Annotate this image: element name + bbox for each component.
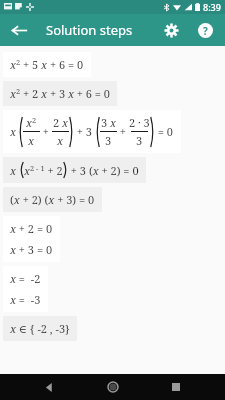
button[interactable]: x2 + 2 x + 3 x + 6 = 0 <box>3 81 117 106</box>
staticText: x = -3 <box>10 292 41 307</box>
staticText: x <box>28 133 35 148</box>
staticText: x + 3 = 0 <box>10 242 53 257</box>
button[interactable]: Back <box>2 14 36 46</box>
staticText: x ∈ { -2 , -3} <box>10 321 70 336</box>
button[interactable]: x ∈ { -2 , -3} <box>3 316 77 341</box>
staticText: x + 2 = 0 <box>10 221 53 236</box>
staticText: (x + 2) (x + 3) = 0 <box>10 192 95 207</box>
staticText: x2 <box>26 115 37 130</box>
staticText: x2 + 2 x + 3 x + 6 = 0 <box>10 86 110 101</box>
button[interactable]: Home <box>98 374 128 400</box>
staticText: 3 <box>136 133 143 148</box>
staticText: x <box>57 133 64 148</box>
button[interactable]: x2 + 5 x + 6 = 0 <box>3 52 91 77</box>
button[interactable]: Recents <box>161 374 191 400</box>
staticText: + 3 <box>74 124 95 139</box>
button[interactable]: (x + 2) (x + 3) = 0 <box>3 187 102 212</box>
staticText: x <box>10 124 17 139</box>
staticText: x = -2 <box>10 271 41 286</box>
staticText: 3 <box>105 133 112 148</box>
staticText: ? <box>203 24 208 38</box>
staticText: 8:39 <box>203 1 221 13</box>
button[interactable]: x = -2 <box>3 266 48 312</box>
staticText: 2 · 3 <box>129 115 150 130</box>
staticText: x2 - 1 + 2 <box>24 163 63 178</box>
staticText: + <box>40 124 52 139</box>
staticText: x <box>10 163 19 178</box>
staticText: + <box>117 124 129 139</box>
button[interactable]: Settings <box>154 14 188 46</box>
button[interactable]: x <box>3 110 181 153</box>
staticText: Solution steps <box>46 21 133 39</box>
staticText: + 3 (x + 2) = 0 <box>68 163 139 178</box>
staticText: 3 x <box>101 115 117 130</box>
button[interactable]: Back <box>34 374 64 400</box>
staticText: = 0 <box>155 124 174 139</box>
staticText: x2 + 5 x + 6 = 0 <box>10 57 84 72</box>
button[interactable]: Help <box>188 14 222 46</box>
button[interactable]: x + 2 = 0 <box>3 216 60 262</box>
staticText: 2 x <box>53 115 69 130</box>
button[interactable]: x <box>3 157 146 183</box>
